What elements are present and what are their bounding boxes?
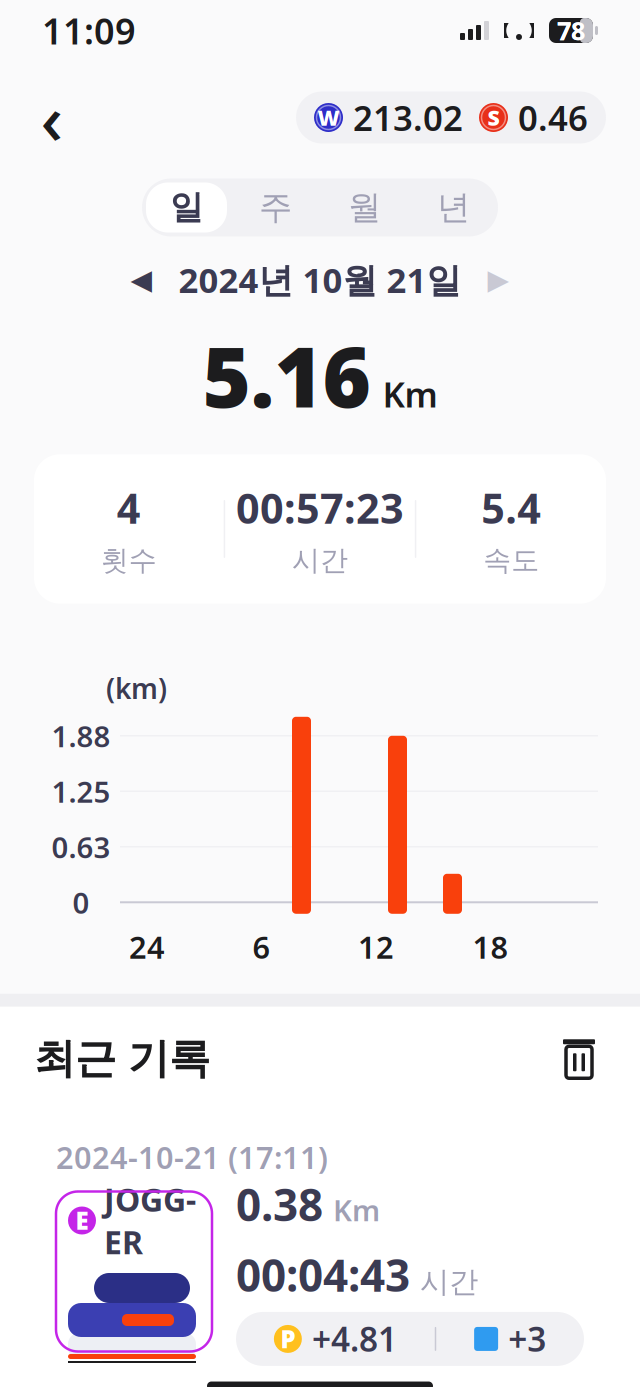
staticText: 2024-10-21 (17:11) (56, 1137, 328, 1177)
staticText: ◀ (130, 264, 152, 295)
staticText: (km) (106, 670, 167, 707)
staticText: 일 (170, 187, 203, 228)
button[interactable]: 주 (231, 178, 320, 236)
staticText: Km (333, 1190, 380, 1229)
staticText: 주 (259, 187, 292, 228)
button[interactable]: Previous day (118, 256, 164, 302)
staticText: 11:09 (42, 7, 136, 54)
staticText: 0.38 (236, 1175, 323, 1233)
button[interactable]: 년 (409, 178, 498, 236)
button[interactable]: 월 (320, 178, 409, 236)
staticText: 78 (557, 14, 585, 47)
button[interactable]: Back (24, 89, 80, 145)
staticText: 4 (117, 480, 141, 535)
staticText: 12 (358, 926, 394, 967)
staticText: 2024년 10월 21일 (178, 256, 461, 302)
staticText: ‹ (40, 71, 63, 164)
staticText: 18 (472, 926, 508, 967)
button[interactable]: Delete records (552, 1032, 606, 1086)
staticText: E (75, 1205, 88, 1236)
staticText: 24 (129, 926, 165, 967)
staticText: 월 (348, 187, 381, 228)
staticText: W (317, 103, 339, 132)
staticText: 5.4 (481, 480, 541, 535)
staticText: 5.16 (202, 320, 370, 430)
button[interactable]: Next day (475, 256, 521, 302)
button[interactable]: 2024-10-21 (17:11) (34, 1115, 606, 1373)
staticText: 횟수 (101, 543, 157, 578)
button[interactable]: W (296, 91, 606, 143)
staticText: S (487, 103, 499, 132)
staticText: 시간 (292, 543, 348, 578)
staticText: 속도 (483, 543, 539, 578)
staticText: 1.25 (51, 772, 110, 811)
staticText: 시간 (420, 1264, 478, 1300)
staticText: Km (382, 371, 437, 417)
staticText: +3 (508, 1317, 546, 1361)
staticText: JOGGER (104, 1178, 196, 1263)
staticText: 1.88 (51, 716, 110, 755)
staticText: 0.63 (51, 827, 110, 866)
staticText: ▶ (487, 264, 509, 295)
staticText: 년 (437, 187, 470, 228)
button[interactable]: 일 (142, 178, 231, 236)
staticText: +4.81 (312, 1317, 397, 1361)
staticText: P (280, 1323, 295, 1355)
staticText: 78 (557, 14, 585, 47)
staticText: 0 (72, 883, 89, 922)
staticText: 최근 기록 (34, 1033, 210, 1084)
staticText: 00:57:23 (236, 480, 404, 535)
staticText: 0.46 (518, 94, 588, 140)
staticText: 6 (252, 926, 270, 967)
staticText: 213.02 (353, 94, 463, 140)
staticText: 00:04:43 (236, 1245, 410, 1304)
